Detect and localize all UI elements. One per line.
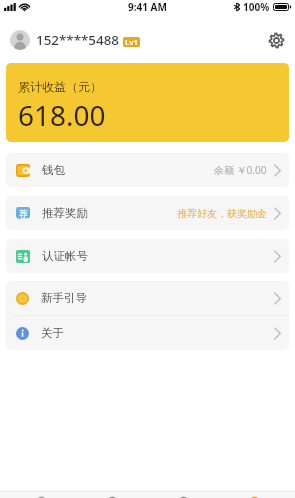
button[interactable]: Home (11, 492, 71, 498)
staticText: 关于 (41, 326, 64, 340)
button[interactable]: Messages (153, 492, 213, 498)
staticText: 152****5488 (36, 31, 119, 49)
button[interactable]: 新手引导 (6, 281, 289, 315)
button[interactable]: Orders (82, 492, 142, 498)
staticText: 618.00 (18, 96, 106, 134)
staticText: 余额 ￥0.00 (214, 163, 267, 177)
button[interactable]: 认证帐号 (6, 239, 289, 273)
button[interactable]: Settings (263, 27, 289, 53)
staticText: 推荐好友，获奖励金 (177, 207, 267, 220)
staticText: 100% (243, 0, 270, 13)
staticText: 推荐奖励 (42, 206, 88, 220)
staticText: 新手引导 (41, 291, 87, 305)
button[interactable]: 累计收益（元） (6, 63, 289, 142)
staticText: 累计收益（元） (18, 79, 102, 94)
button[interactable]: 荐 (6, 196, 289, 230)
staticText: 认证帐号 (42, 249, 88, 263)
button[interactable]: Profile (224, 492, 284, 498)
staticText: 钱包 (42, 163, 65, 177)
staticText: Lv1 (125, 37, 138, 47)
staticText: 9:41 AM (128, 0, 167, 13)
staticText: 荐 (19, 208, 28, 219)
button[interactable]: 钱包 (6, 153, 289, 187)
button[interactable]: 关于 (6, 316, 289, 350)
